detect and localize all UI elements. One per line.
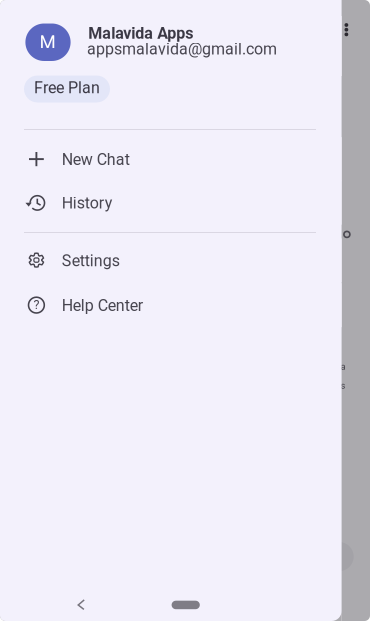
- button[interactable]: ?: [0, 283, 342, 327]
- button[interactable]: Settings: [0, 238, 342, 282]
- button[interactable]: Back: [71, 595, 95, 615]
- staticText: History: [62, 194, 113, 212]
- button[interactable]: More options: [336, 18, 356, 42]
- staticText: s: [341, 380, 346, 391]
- staticText: ?: [33, 297, 39, 312]
- button[interactable]: Free Plan: [24, 75, 110, 102]
- staticText: Free Plan: [34, 78, 100, 97]
- staticText: M: [40, 31, 56, 53]
- button[interactable]: M: [0, 16, 342, 76]
- staticText: New Chat: [62, 150, 130, 169]
- staticText: appsmalavida@gmail.com: [87, 40, 277, 58]
- button[interactable]: History: [0, 181, 342, 225]
- staticText: Malavida Apps: [88, 24, 193, 43]
- staticText: a: [341, 361, 346, 372]
- staticText: Settings: [62, 251, 120, 270]
- staticText: Help Center: [62, 296, 143, 315]
- button[interactable]: Home: [172, 601, 200, 609]
- button[interactable]: New Chat: [0, 137, 342, 181]
